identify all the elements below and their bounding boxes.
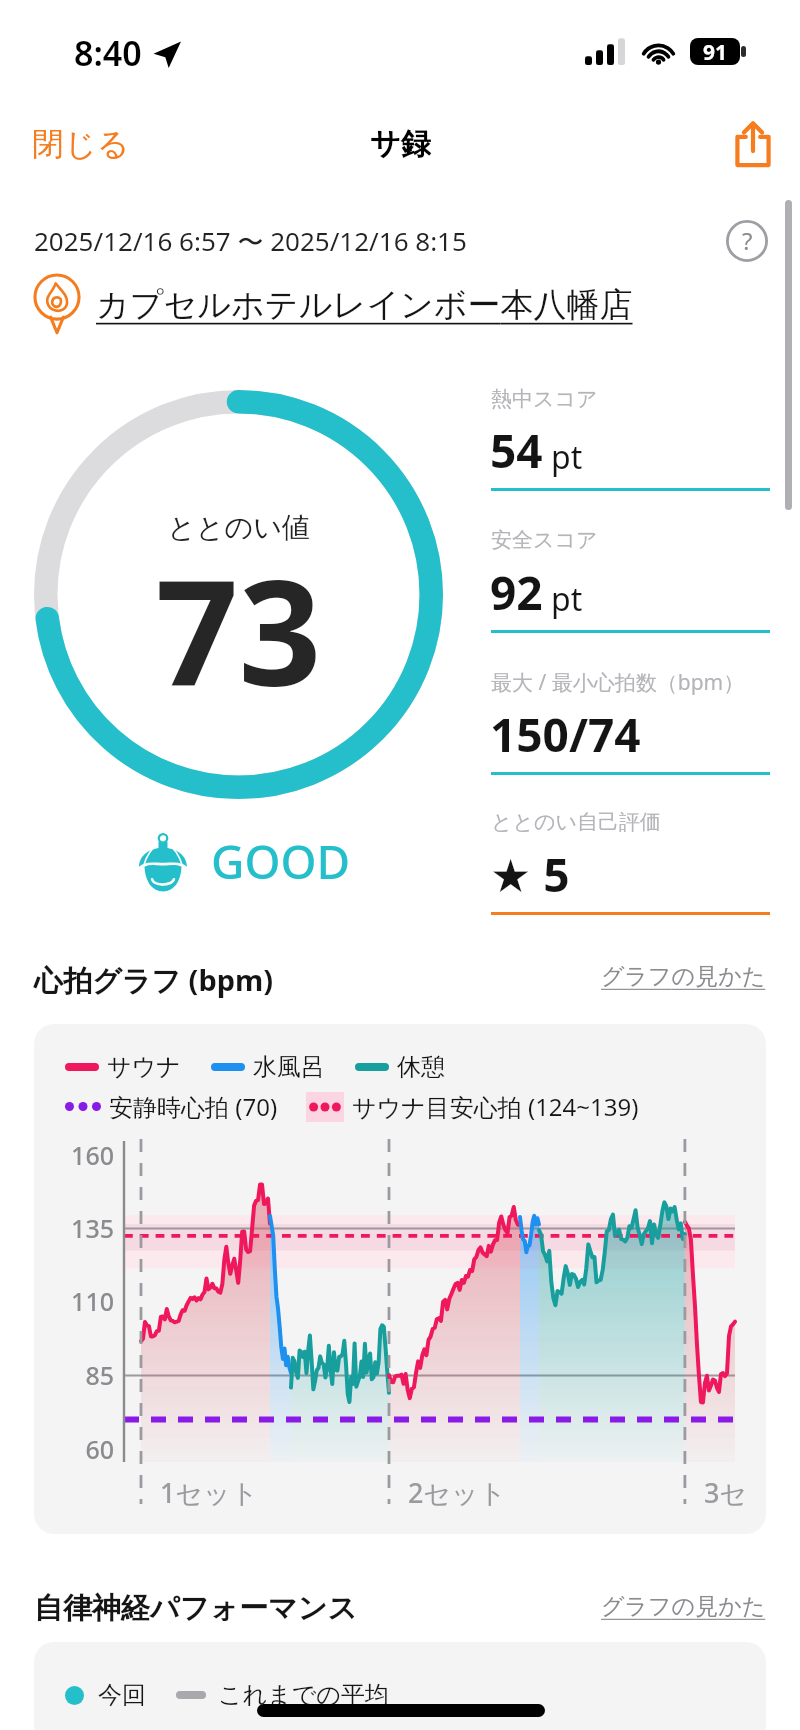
staticText: 8:40 [74, 30, 142, 76]
staticText: 水風呂 [253, 1052, 325, 1082]
staticText: 54 [490, 419, 543, 482]
staticText: 2セット [408, 1474, 507, 1511]
staticText: 92 [490, 561, 543, 624]
staticText: GOOD [211, 830, 351, 893]
staticText: 自律神経パフォーマンス [34, 1590, 358, 1627]
staticText: グラフの見かた [601, 962, 766, 991]
staticText: pt [551, 435, 583, 479]
staticText: 安全スコア [491, 527, 598, 553]
staticText: 160 [34, 1138, 114, 1172]
staticText: ととのい値 [34, 510, 443, 545]
staticText: 安静時心拍 (70) [109, 1090, 278, 1123]
staticText: 73 [34, 531, 443, 728]
staticText: 最大 / 最小心拍数（bpm） [491, 668, 745, 697]
staticText: 150/74 [490, 703, 641, 766]
staticText: 135 [34, 1211, 114, 1245]
staticText: pt [551, 577, 583, 621]
staticText: 休憩 [397, 1052, 445, 1082]
button[interactable]: Share [706, 114, 800, 174]
button[interactable]: カプセルホテルレインボー本八幡店 [28, 272, 633, 334]
staticText: サウナ [107, 1052, 181, 1082]
staticText: 今回 [98, 1680, 146, 1710]
staticText: 1セット [160, 1474, 259, 1511]
staticText: ★ 5 [490, 843, 570, 906]
staticText: サウナ目安心拍 (124~139) [352, 1090, 639, 1123]
staticText: ? [742, 224, 753, 257]
staticText: 85 [34, 1358, 114, 1392]
staticText: 2025/12/16 6:57 〜 2025/12/16 8:15 [34, 223, 467, 259]
staticText: サ録 [370, 125, 431, 163]
staticText: 91 [703, 38, 728, 65]
staticText: 心拍グラフ (bpm) [34, 960, 274, 1000]
button[interactable]: 閉じる [0, 114, 162, 174]
staticText: 3セ [704, 1474, 748, 1511]
staticText: 熱中スコア [491, 386, 598, 412]
button[interactable]: Help [722, 216, 772, 266]
staticText: グラフの見かた [601, 1592, 766, 1621]
button[interactable]: グラフの見かた [560, 1592, 766, 1621]
button[interactable]: グラフの見かた [560, 962, 766, 991]
staticText: 110 [34, 1284, 114, 1318]
staticText: 閉じる [32, 124, 130, 164]
staticText: これまでの平均 [218, 1680, 389, 1710]
staticText: カプセルホテルレインボー本八幡店 [96, 284, 633, 326]
staticText: ととのい自己評価 [491, 809, 661, 835]
staticText: 60 [34, 1432, 114, 1466]
